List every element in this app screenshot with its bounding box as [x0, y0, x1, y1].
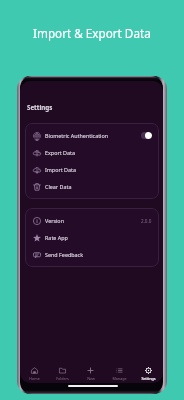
other: Folders [59, 367, 66, 374]
staticText: 2.0.0 [141, 218, 152, 224]
button[interactable]: Manage [105, 364, 134, 383]
staticText: Import Data [45, 166, 76, 173]
other: Home [31, 367, 38, 374]
staticText: Clear Data [45, 183, 72, 190]
button[interactable]: New [76, 364, 105, 383]
staticText: Settings [27, 103, 53, 111]
other: New [87, 367, 94, 374]
button[interactable]: Home [20, 364, 48, 383]
button[interactable]: Clear Data [25, 178, 159, 195]
staticText: Export Data [45, 149, 75, 156]
button[interactable]: Settings [134, 364, 163, 383]
button[interactable]: Biometric Authentication [25, 127, 159, 144]
staticText: Settings [141, 376, 156, 381]
button[interactable]: Export Data [25, 144, 159, 161]
button[interactable]: Version [25, 212, 159, 229]
staticText: Biometric Authentication [45, 132, 109, 139]
button[interactable]: Folders [48, 364, 76, 383]
staticText: Import & Export Data [33, 25, 151, 41]
other: Settings [145, 367, 152, 374]
staticText: New [87, 376, 95, 381]
staticText: Folders [56, 376, 69, 381]
staticText: Rate App [45, 234, 68, 241]
button[interactable]: Send Feedback [25, 246, 159, 263]
button[interactable]: Import Data [25, 161, 159, 178]
staticText: Send Feedback [45, 251, 84, 258]
other: Manage [116, 367, 123, 374]
staticText: Home [29, 376, 40, 381]
staticText: Version [45, 217, 64, 224]
button[interactable]: Rate App [25, 229, 159, 246]
staticText: Manage [112, 376, 127, 381]
